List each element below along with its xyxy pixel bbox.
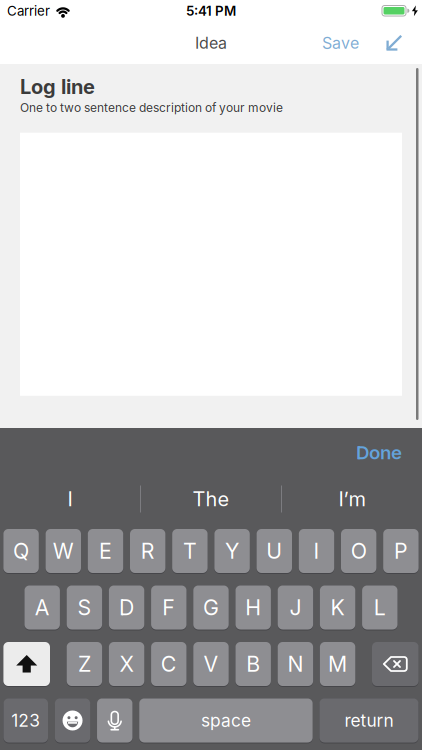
button[interactable]: Q <box>3 529 39 573</box>
staticText: N <box>287 651 303 677</box>
button[interactable]: Shift <box>3 642 50 686</box>
button[interactable]: A <box>24 585 60 629</box>
staticText: Carrier <box>7 3 50 19</box>
staticText: V <box>203 651 218 677</box>
button[interactable]: Dictation <box>97 698 132 742</box>
staticText: I <box>67 487 72 511</box>
button[interactable]: F <box>151 585 186 629</box>
staticText: E <box>99 538 112 564</box>
staticText: The <box>192 487 229 511</box>
staticText: P <box>394 538 408 564</box>
staticText: return <box>344 710 393 731</box>
button[interactable]: space <box>139 698 313 742</box>
button[interactable]: S <box>67 585 102 629</box>
button[interactable]: X <box>109 642 144 686</box>
staticText: 123 <box>11 710 40 731</box>
staticText: space <box>201 710 251 731</box>
staticText: J <box>289 595 301 620</box>
staticText: K <box>331 595 345 620</box>
button[interactable]: Z <box>67 642 102 686</box>
staticText: W <box>53 538 74 564</box>
staticText: Done <box>356 441 402 463</box>
staticText: 5:41 PM <box>186 3 236 19</box>
staticText: I <box>313 538 319 564</box>
staticText: R <box>141 538 155 564</box>
staticText: Save <box>322 34 359 52</box>
button[interactable]: Emoji <box>55 698 90 742</box>
staticText: Log line <box>20 75 95 99</box>
button[interactable]: M <box>320 642 355 686</box>
button[interactable]: Save <box>322 34 359 52</box>
button[interactable]: U <box>257 529 292 573</box>
staticText: C <box>161 651 177 677</box>
button[interactable]: G <box>193 585 229 629</box>
button[interactable]: H <box>235 585 271 629</box>
staticText: S <box>77 595 91 620</box>
staticText: A <box>35 595 50 620</box>
staticText: G <box>203 595 219 620</box>
staticText: D <box>119 595 134 620</box>
button[interactable]: B <box>235 642 271 686</box>
staticText: T <box>183 538 197 564</box>
staticText: O <box>351 538 367 564</box>
button[interactable]: The <box>141 487 281 511</box>
staticText: X <box>120 651 134 677</box>
staticText: M <box>328 651 347 677</box>
staticText: L <box>374 595 386 620</box>
button[interactable]: J <box>278 585 313 629</box>
button[interactable]: D <box>109 585 144 629</box>
staticText: One to two sentence description of your … <box>20 101 283 115</box>
button[interactable]: L <box>362 585 397 629</box>
button[interactable]: return <box>319 698 418 742</box>
button[interactable]: P <box>383 529 419 573</box>
button[interactable]: Dismiss keyboard <box>359 34 403 52</box>
button[interactable]: C <box>151 642 186 686</box>
staticText: H <box>245 595 261 620</box>
button[interactable]: E <box>88 529 123 573</box>
button[interactable]: K <box>320 585 355 629</box>
staticText: U <box>266 538 282 564</box>
button[interactable]: T <box>172 529 208 573</box>
staticText: B <box>246 651 260 677</box>
staticText: I’m <box>338 487 365 511</box>
staticText: Q <box>13 538 29 564</box>
button[interactable]: Numbers <box>4 698 48 742</box>
button[interactable]: I <box>0 487 140 511</box>
button[interactable]: W <box>46 529 81 573</box>
staticText: F <box>162 595 175 620</box>
button[interactable]: Done <box>356 441 402 463</box>
staticText: Idea <box>195 34 227 52</box>
button[interactable]: N <box>278 642 313 686</box>
button[interactable]: V <box>193 642 229 686</box>
button[interactable]: O <box>341 529 376 573</box>
button[interactable]: Y <box>214 529 250 573</box>
button[interactable]: R <box>130 529 165 573</box>
button[interactable]: I <box>299 529 334 573</box>
button[interactable]: Delete <box>372 642 419 686</box>
staticText: Z <box>78 651 91 677</box>
button[interactable]: I’m <box>282 487 422 511</box>
staticText: Y <box>225 538 239 564</box>
